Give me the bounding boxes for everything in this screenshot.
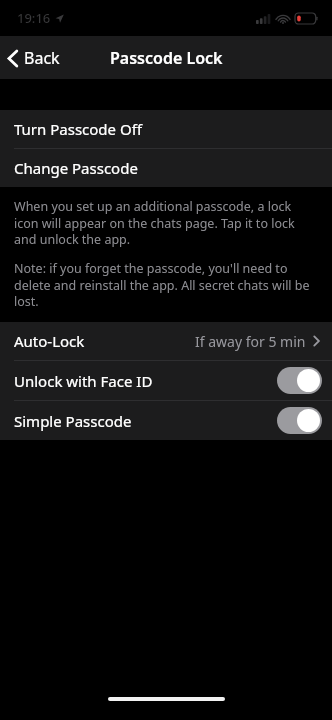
button[interactable]: Unlock with Face ID bbox=[0, 361, 332, 400]
button[interactable]: Turn Passcode Off bbox=[0, 110, 332, 148]
staticText: Auto-Lock bbox=[14, 331, 85, 351]
button[interactable]: Back bbox=[0, 41, 70, 75]
staticText: 19:16 bbox=[17, 9, 51, 27]
button[interactable]: Auto-Lock bbox=[0, 322, 332, 360]
button[interactable]: Toggle bbox=[277, 367, 322, 394]
staticText: Simple Passcode bbox=[14, 411, 132, 431]
button[interactable]: Change Passcode bbox=[0, 149, 332, 187]
staticText: Passcode Lock bbox=[110, 47, 223, 69]
staticText: Back bbox=[24, 47, 60, 69]
staticText: Change Passcode bbox=[14, 158, 138, 178]
button[interactable]: Toggle bbox=[277, 407, 322, 434]
button[interactable]: Simple Passcode bbox=[0, 401, 332, 440]
staticText: Turn Passcode Off bbox=[14, 119, 142, 139]
staticText: Unlock with Face ID bbox=[14, 371, 153, 391]
staticText: If away for 5 min bbox=[195, 332, 306, 351]
staticText: Note: if you forget the passcode, you'll… bbox=[14, 260, 316, 309]
staticText: When you set up an additional passcode, … bbox=[14, 198, 316, 247]
